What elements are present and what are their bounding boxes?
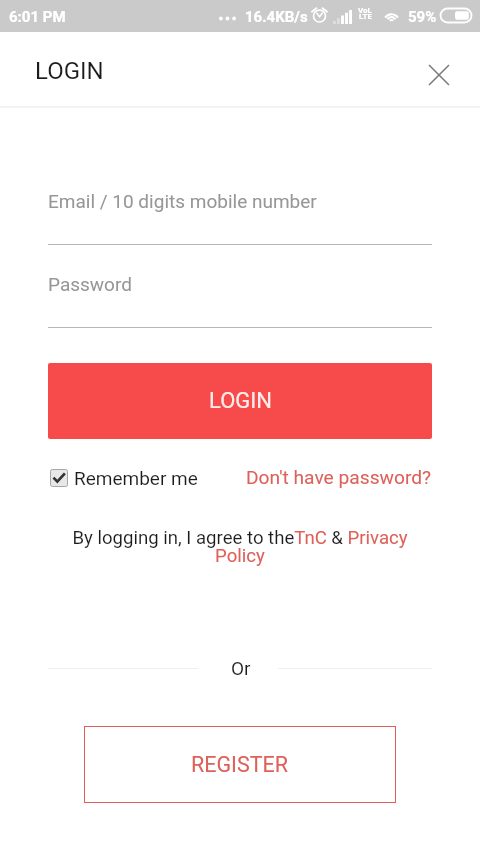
- button[interactable]: Don't have password?: [246, 466, 432, 489]
- staticText: 59%: [408, 8, 437, 26]
- button[interactable]: REGISTER: [84, 726, 396, 803]
- button[interactable]: Close: [420, 56, 458, 94]
- staticText: Password: [48, 273, 132, 295]
- button[interactable]: LOGIN: [48, 363, 432, 439]
- staticText: LOGIN: [35, 57, 104, 85]
- button[interactable]: Remember me: [50, 467, 198, 489]
- staticText: VoL: [358, 6, 372, 15]
- staticText: LTE: [359, 12, 372, 21]
- staticText: Remember me: [74, 467, 198, 489]
- staticText: Email / 10 digits mobile number: [48, 190, 317, 212]
- staticText: By logging in, I agree to theTnC & Priva…: [58, 527, 422, 566]
- staticText: 6:01 PM: [9, 8, 66, 26]
- staticText: REGISTER: [191, 752, 289, 777]
- staticText: LOGIN: [209, 388, 272, 414]
- staticText: Or: [231, 657, 251, 679]
- staticText: 16.4KB/s: [245, 8, 308, 26]
